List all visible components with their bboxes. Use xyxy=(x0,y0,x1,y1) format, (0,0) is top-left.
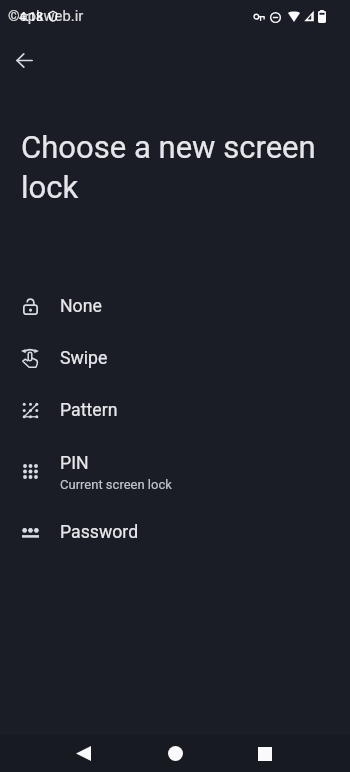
staticText: Choose a new screen lock xyxy=(21,129,321,206)
staticText: Current screen lock xyxy=(60,477,172,492)
button[interactable]: Navigate up xyxy=(4,40,44,80)
button[interactable]: Pattern xyxy=(0,384,350,436)
staticText: None xyxy=(60,296,102,317)
staticText: Pattern xyxy=(60,400,118,421)
button[interactable]: Home xyxy=(151,735,199,772)
staticText: PIN xyxy=(60,453,89,474)
button[interactable]: PIN xyxy=(0,436,350,506)
staticText: ©apkweb.ir xyxy=(8,7,84,24)
button[interactable]: Swipe xyxy=(0,332,350,384)
staticText: 4:18 xyxy=(19,9,44,24)
staticText: Swipe xyxy=(60,348,108,369)
button[interactable]: Back xyxy=(59,735,107,772)
button[interactable]: Password xyxy=(0,506,350,558)
button[interactable]: Recent apps xyxy=(241,735,289,772)
staticText: Password xyxy=(60,522,139,543)
button[interactable]: None xyxy=(0,280,350,332)
